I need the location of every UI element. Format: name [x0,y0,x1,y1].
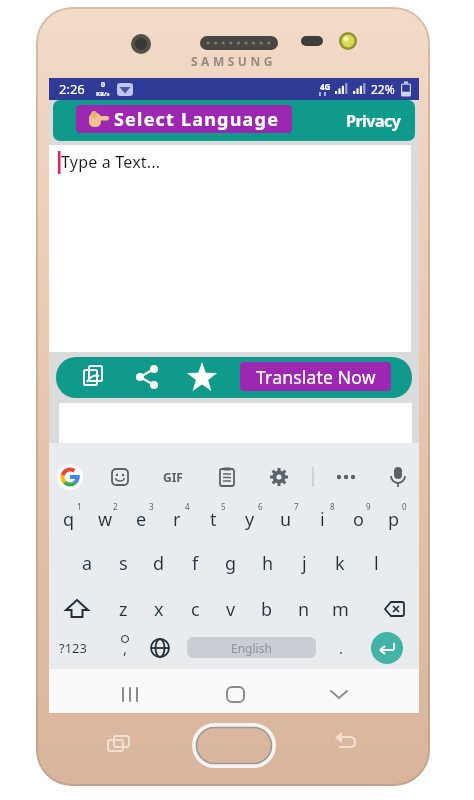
staticText: GIF [163,469,183,485]
button[interactable]: t [195,505,231,533]
staticText: r [173,507,181,532]
button[interactable]: a [69,549,105,577]
button[interactable]: l [358,549,394,577]
button[interactable] [57,464,83,490]
staticText: q [63,507,75,532]
button[interactable]: p [376,505,412,533]
staticText: 1 [77,501,82,512]
button[interactable]: Translate Now [240,362,391,391]
button[interactable]: k [322,549,358,577]
button[interactable] [371,632,403,664]
staticText: , [123,638,128,658]
button[interactable]: q [51,505,87,533]
button[interactable]: u [268,505,304,533]
staticText: x [154,597,164,622]
staticText: f [192,551,199,576]
staticText: Select Language [114,107,280,132]
button[interactable]: Select Language [76,105,292,133]
button[interactable] [215,674,255,708]
staticText: b [261,597,273,622]
staticText: z [119,597,128,622]
staticText: a [82,551,93,576]
staticText: 0 [402,501,407,512]
button[interactable]: v [213,595,249,623]
staticText: 6 [258,501,263,512]
button[interactable]: i [304,505,340,533]
staticText: v [226,597,236,622]
button[interactable]: r [159,505,195,533]
staticText: KB/s [96,90,110,98]
button[interactable]: c [177,595,213,623]
staticText: 5 [221,501,226,512]
staticText: 3 [149,501,154,512]
staticText: g [225,551,237,576]
staticText: e [136,507,147,532]
button[interactable]: w [87,505,123,533]
staticText: Privacy [346,110,401,132]
staticText: t [210,507,217,532]
staticText: p [388,507,400,532]
staticText: SAMSUNG [191,53,276,69]
staticText: w [98,507,113,532]
staticText: d [153,551,165,576]
staticText: o [353,507,364,532]
staticText: k [335,551,345,576]
button[interactable] [319,674,359,708]
button[interactable]: j [286,549,322,577]
staticText: ?123 [59,639,87,657]
staticText: s [119,551,128,576]
staticText: i [320,507,325,532]
staticText: 2:26 [59,80,85,98]
button[interactable]: s [105,549,141,577]
staticText: n [298,597,310,622]
staticText: c [191,597,200,622]
staticText: English [231,640,272,656]
button[interactable]: y [232,505,268,533]
staticText: . [339,638,344,658]
button[interactable] [127,357,167,398]
staticText: 4G [320,81,331,92]
staticText: 7 [294,501,299,512]
staticText: l [374,551,379,576]
staticText: 4 [185,501,190,512]
staticText: Type a Text... [61,151,161,173]
button[interactable]: o [340,505,376,533]
button[interactable] [73,357,113,398]
button[interactable] [182,357,222,398]
staticText: 0 [101,80,106,90]
button[interactable]: English [187,637,316,658]
button[interactable]: x [141,595,177,623]
button[interactable]: Privacy [341,100,405,141]
staticText: h [262,551,274,576]
staticText: 8 [330,501,335,512]
staticText: 22% [371,81,395,97]
staticText: Translate Now [256,365,376,389]
button[interactable]: e [123,505,159,533]
staticText: 2 [113,501,118,512]
staticText: y [245,507,255,532]
staticText: u [280,507,292,532]
button[interactable]: z [105,595,141,623]
button[interactable]: f [177,549,213,577]
button[interactable]: n [286,595,322,623]
button[interactable]: d [141,549,177,577]
button[interactable] [110,674,150,708]
button[interactable]: b [249,595,285,623]
staticText: m [332,597,349,622]
button[interactable]: m [322,595,358,623]
button[interactable]: h [250,549,286,577]
staticText: j [302,551,307,576]
staticText: 9 [366,501,371,512]
button[interactable]: g [213,549,249,577]
